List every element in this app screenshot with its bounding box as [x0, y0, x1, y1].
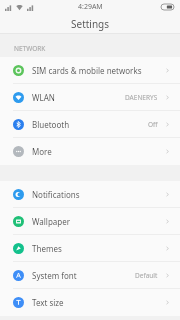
staticText: More [32, 146, 52, 157]
other: Open Bluetooth [164, 121, 171, 128]
staticText: SIM cards & mobile networks [32, 65, 142, 76]
staticText: Notifications [32, 189, 80, 200]
other: Open SIM cards & mobile networks [164, 67, 171, 74]
other: Open Themes [164, 245, 171, 252]
other: Open Wallpaper [164, 218, 171, 225]
staticText: 4:29AM [78, 2, 103, 12]
other: Open Text size [164, 299, 171, 306]
staticText: WLAN [32, 92, 55, 103]
staticText: Default [135, 271, 158, 280]
button[interactable]: Themes [0, 235, 180, 262]
staticText: Text size [32, 297, 64, 308]
staticText: System font [32, 270, 77, 281]
other: Open Notifications [164, 191, 171, 198]
staticText: Themes [32, 243, 62, 254]
button[interactable]: Bluetooth [0, 111, 180, 138]
other: Open More [164, 148, 171, 155]
staticText: DAENERYS [125, 93, 158, 102]
button[interactable]: Notifications [0, 181, 180, 208]
button[interactable]: More [0, 138, 180, 165]
staticText: Wallpaper [32, 216, 71, 227]
button[interactable]: System font [0, 262, 180, 289]
button[interactable]: SIM cards & mobile networks [0, 57, 180, 84]
button[interactable]: Text size [0, 289, 180, 316]
staticText: Bluetooth [32, 119, 70, 130]
other: Open System font [164, 272, 171, 279]
staticText: NETWORK [14, 44, 46, 53]
staticText: Off [148, 120, 158, 129]
button[interactable]: Wallpaper [0, 208, 180, 235]
staticText: Settings [71, 17, 110, 31]
other: Open WLAN [164, 94, 171, 101]
button[interactable]: WLAN [0, 84, 180, 111]
